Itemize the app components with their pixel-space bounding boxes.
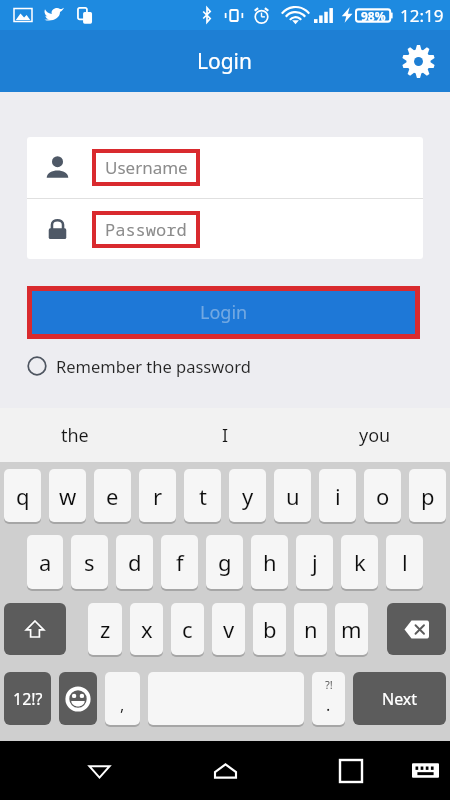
button[interactable]: g (206, 535, 243, 589)
staticText: you (359, 423, 391, 448)
button[interactable]: Password (27, 199, 423, 259)
button[interactable]: Login (32, 291, 415, 334)
button[interactable]: Home (194, 741, 256, 800)
button[interactable]: k (341, 535, 378, 589)
button[interactable]: z (88, 603, 122, 655)
staticText: o (376, 481, 390, 511)
staticText: t (199, 481, 207, 511)
button[interactable]: Next (353, 672, 446, 725)
staticText: Login (197, 47, 253, 76)
staticText: , (120, 694, 125, 716)
staticText: . (326, 694, 331, 716)
staticText: n (304, 614, 318, 644)
button[interactable]: w (49, 469, 86, 522)
staticText: g (218, 547, 232, 577)
button[interactable]: Remember the password (27, 351, 251, 381)
staticText: j (312, 547, 318, 577)
staticText: q (16, 481, 30, 511)
button[interactable]: Username (27, 137, 423, 198)
button[interactable]: b (253, 603, 286, 655)
button[interactable]: o (364, 469, 401, 522)
button[interactable]: q (4, 469, 41, 522)
button[interactable]: v (212, 603, 245, 655)
button[interactable]: s (71, 535, 108, 589)
staticText: p (421, 481, 435, 511)
button[interactable]: r (139, 469, 176, 522)
button[interactable]: , (105, 672, 140, 725)
button[interactable]: c (171, 603, 204, 655)
button[interactable]: p (409, 469, 446, 522)
staticText: l (402, 547, 408, 577)
button[interactable]: the (0, 408, 150, 462)
button[interactable]: 12!? (4, 672, 51, 725)
button[interactable]: y (229, 469, 266, 522)
staticText: r (153, 481, 163, 511)
staticText: 12!? (13, 688, 43, 710)
button[interactable]: e (94, 469, 131, 522)
staticText: k (354, 547, 366, 577)
button[interactable]: Recents (320, 741, 382, 800)
button[interactable]: d (116, 535, 153, 589)
button[interactable]: i (319, 469, 356, 522)
button[interactable]: a (27, 535, 63, 589)
button[interactable]: I (150, 408, 300, 462)
staticText: 98% (361, 8, 386, 24)
button[interactable]: u (274, 469, 311, 522)
button[interactable]: Backspace (387, 603, 446, 655)
staticText: Next (382, 688, 418, 710)
button[interactable]: n (294, 603, 327, 655)
staticText: f (176, 547, 184, 577)
staticText: v (223, 614, 235, 644)
button[interactable]: t (184, 469, 221, 522)
button[interactable]: Keyboard (394, 741, 450, 800)
staticText: z (100, 614, 111, 644)
button[interactable]: Settings (394, 37, 442, 85)
staticText: ?! (325, 677, 333, 692)
button[interactable]: Emoji (59, 672, 97, 725)
staticText: Login (200, 300, 248, 325)
staticText: m (341, 614, 362, 644)
staticText: c (182, 614, 193, 644)
staticText: s (84, 547, 95, 577)
button[interactable]: j (296, 535, 333, 589)
button[interactable]: Back (68, 741, 130, 800)
staticText: d (128, 547, 142, 577)
button[interactable]: l (386, 535, 423, 589)
button[interactable]: h (251, 535, 288, 589)
staticText: the (61, 423, 89, 448)
staticText: 12:19 (400, 4, 444, 27)
staticText: x (141, 614, 153, 644)
button[interactable]: you (300, 408, 450, 462)
staticText: i (335, 481, 341, 511)
staticText: Password (105, 218, 187, 241)
staticText: Remember the password (56, 355, 251, 377)
staticText: y (242, 481, 254, 511)
staticText: w (59, 481, 77, 511)
staticText: I (222, 423, 229, 448)
staticText: u (286, 481, 300, 511)
button[interactable]: Shift (4, 603, 66, 655)
staticText: b (263, 614, 277, 644)
staticText: e (106, 481, 119, 511)
button[interactable]: x (130, 603, 163, 655)
button[interactable]: . (312, 672, 345, 725)
button[interactable]: m (335, 603, 368, 655)
staticText: h (263, 547, 277, 577)
staticText: a (39, 547, 52, 577)
staticText: Username (105, 156, 188, 179)
button[interactable]: f (161, 535, 198, 589)
